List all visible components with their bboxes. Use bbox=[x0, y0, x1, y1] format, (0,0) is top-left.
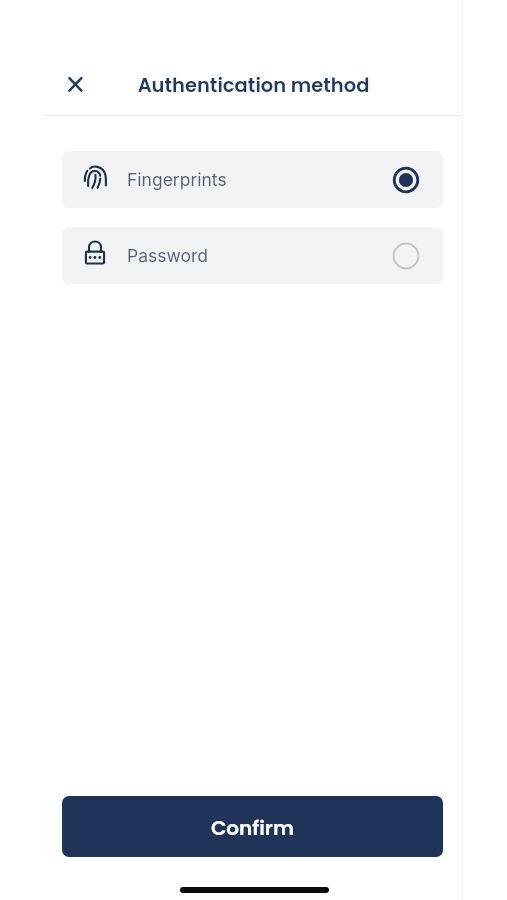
staticText: Fingerprints bbox=[127, 169, 227, 190]
button[interactable]: Close bbox=[58, 67, 93, 102]
button[interactable]: Fingerprints bbox=[62, 151, 443, 208]
staticText: Confirm bbox=[211, 814, 294, 842]
staticText: Password bbox=[127, 245, 208, 266]
button[interactable]: Confirm bbox=[62, 796, 443, 857]
button[interactable]: Password bbox=[62, 227, 443, 284]
staticText: Authentication method bbox=[0, 72, 507, 99]
